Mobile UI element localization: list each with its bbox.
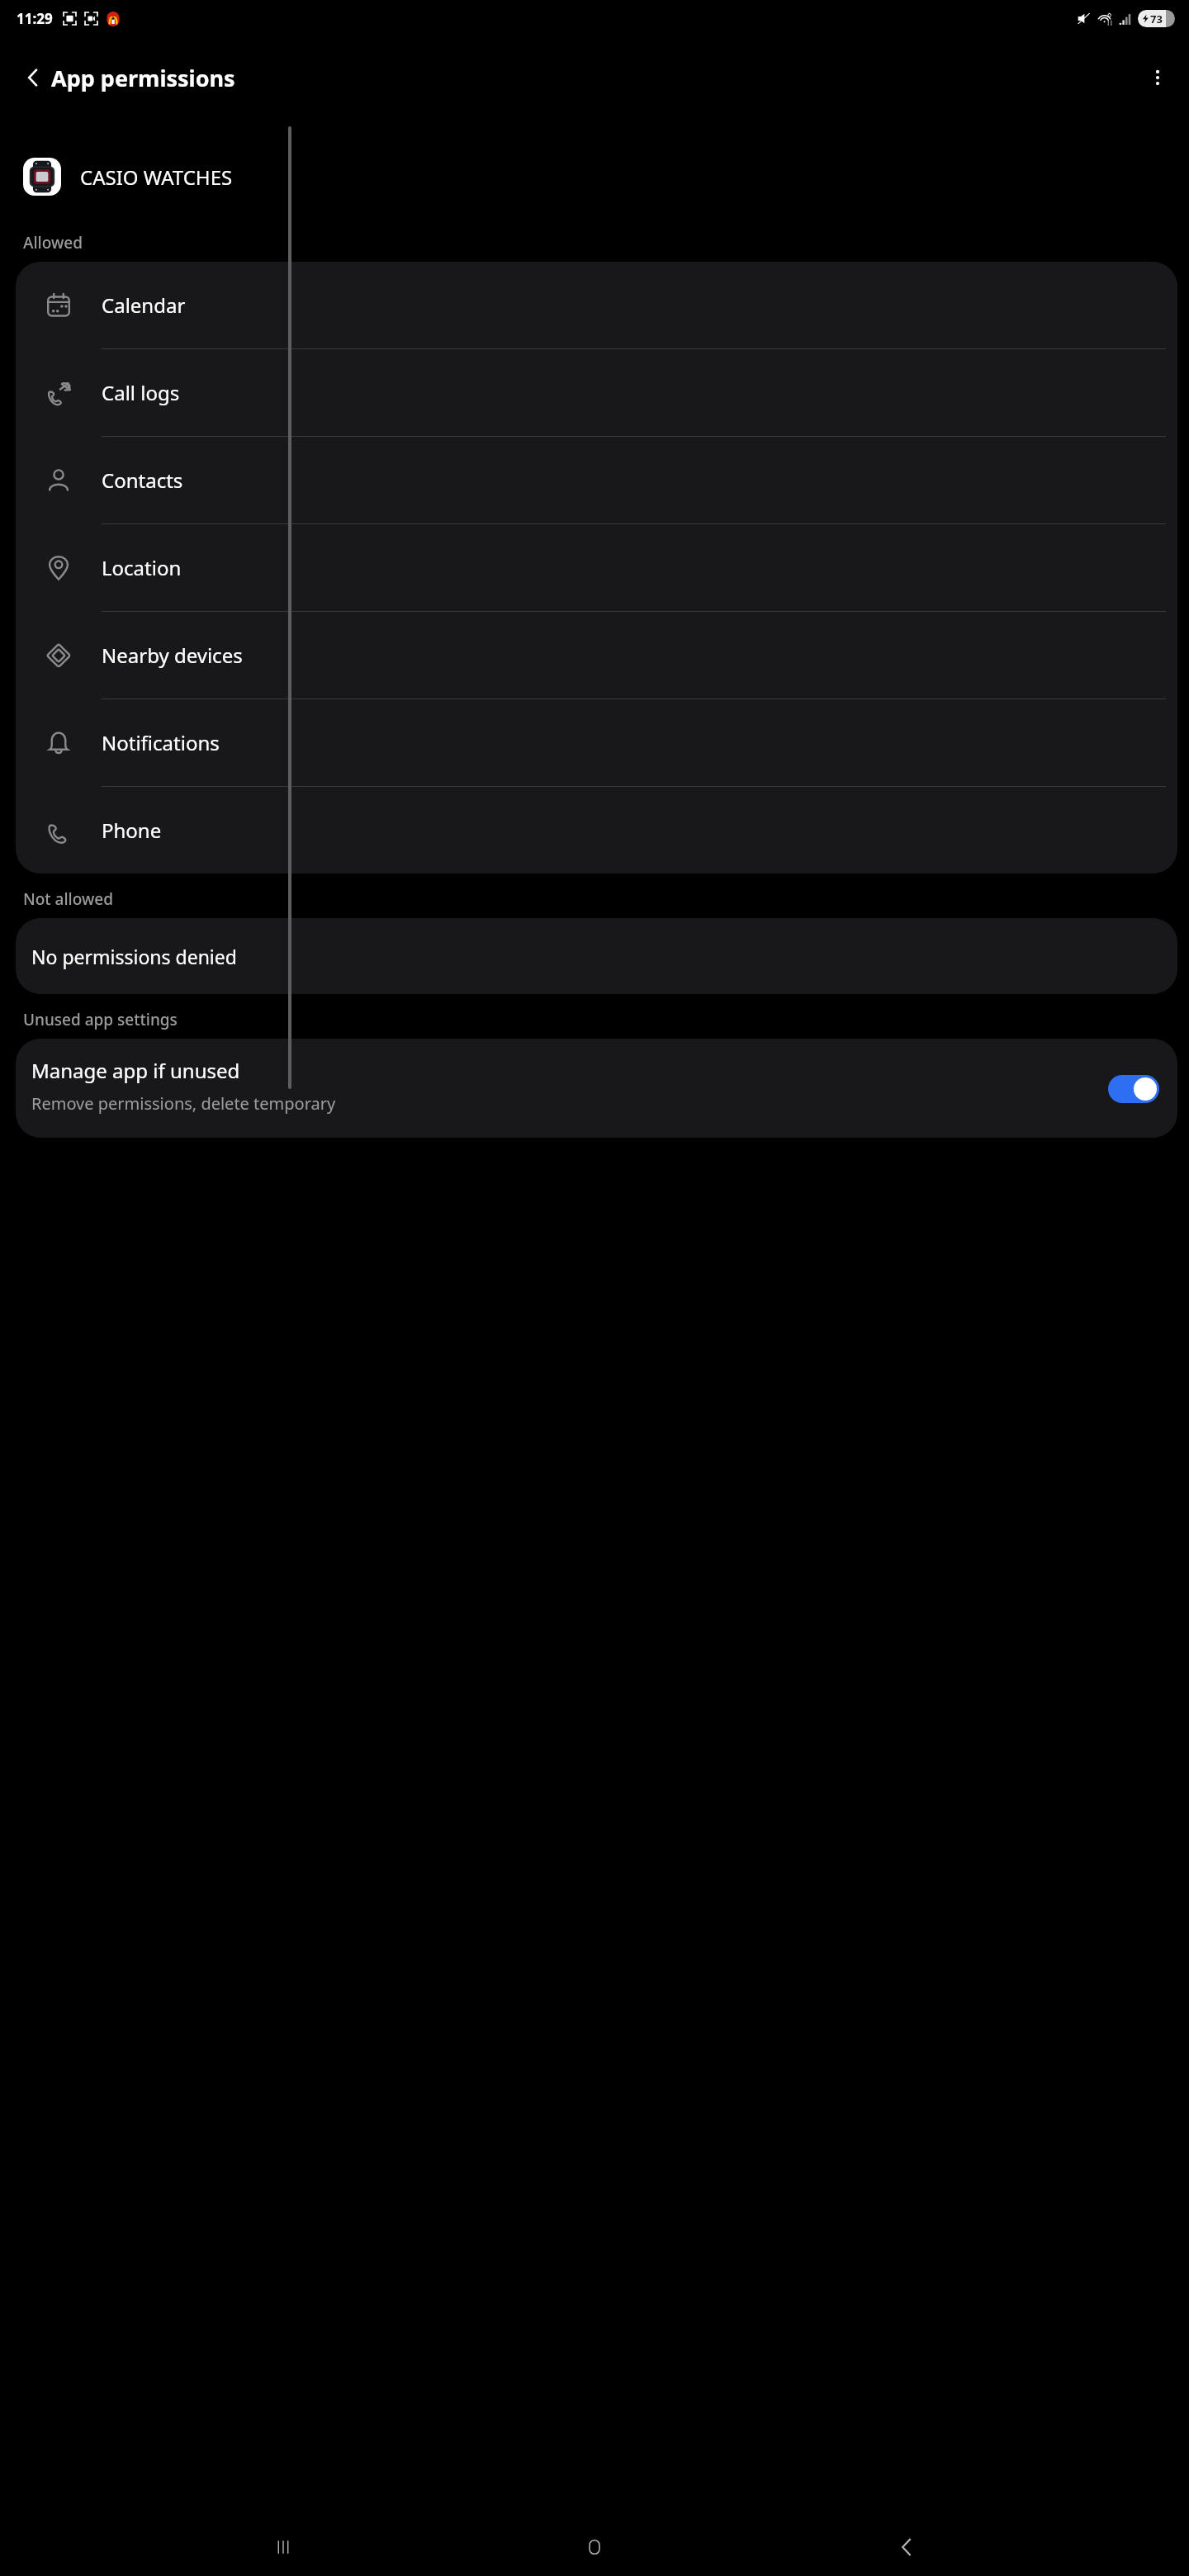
staticText: Location bbox=[102, 554, 182, 581]
staticText: 11:29 bbox=[17, 9, 53, 28]
button[interactable]: Phone bbox=[16, 787, 1177, 874]
button[interactable]: More options bbox=[1136, 56, 1179, 99]
button[interactable]: Manage app if unused toggle bbox=[1108, 1075, 1159, 1103]
button[interactable]: Calendar bbox=[16, 262, 1177, 348]
button[interactable]: No permissions denied bbox=[16, 918, 1177, 994]
button[interactable]: Call logs bbox=[16, 349, 1177, 436]
staticText: Manage app if unused bbox=[31, 1057, 240, 1084]
button[interactable]: Recents bbox=[254, 2518, 312, 2576]
staticText: Notifications bbox=[102, 729, 220, 756]
button[interactable]: Back bbox=[12, 56, 54, 99]
staticText: 73 bbox=[1150, 12, 1163, 26]
staticText: CASIO WATCHES bbox=[80, 163, 233, 191]
button[interactable]: Manage app if unused bbox=[16, 1039, 1177, 1138]
staticText: Unused app settings bbox=[23, 1009, 178, 1030]
staticText: Contacts bbox=[102, 466, 183, 494]
button[interactable]: Notifications bbox=[16, 699, 1177, 786]
staticText: No permissions denied bbox=[31, 944, 237, 969]
staticText: Nearby devices bbox=[102, 642, 243, 669]
button[interactable]: Nearby devices bbox=[16, 612, 1177, 698]
staticText: Call logs bbox=[102, 379, 180, 406]
staticText: App permissions bbox=[51, 63, 235, 93]
button[interactable]: Back bbox=[878, 2518, 936, 2576]
staticText: Calendar bbox=[102, 291, 186, 319]
staticText: Allowed bbox=[23, 232, 83, 253]
button[interactable]: Home bbox=[566, 2518, 623, 2576]
button[interactable]: Location bbox=[16, 524, 1177, 611]
staticText: Phone bbox=[102, 817, 162, 844]
staticText: Not allowed bbox=[23, 888, 113, 910]
staticText: Remove permissions, delete temporary bbox=[31, 1092, 336, 1115]
button[interactable]: Contacts bbox=[16, 437, 1177, 523]
